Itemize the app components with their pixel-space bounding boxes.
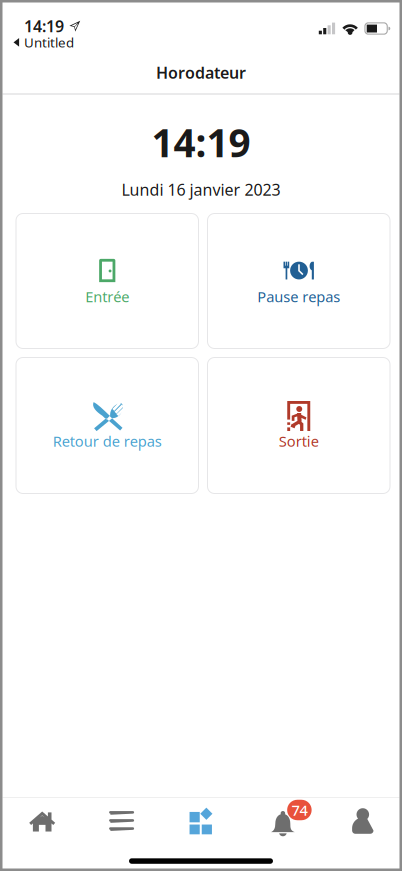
staticText: Sortie <box>279 431 319 451</box>
staticText: Horodateur <box>156 62 246 83</box>
staticText: Untitled <box>24 33 74 51</box>
button[interactable]: Notifications <box>241 786 320 856</box>
button[interactable]: Pause repas <box>207 213 390 348</box>
staticText: 74 <box>291 800 307 820</box>
button[interactable]: Accueil <box>2 786 82 856</box>
staticText: 14:19 <box>151 116 250 168</box>
button[interactable]: Menu <box>82 786 161 856</box>
staticText: Lundi 16 janvier 2023 <box>121 179 280 200</box>
staticText: Pause repas <box>257 287 340 306</box>
staticText: Retour de repas <box>53 431 162 451</box>
staticText: 14:19 <box>24 15 64 37</box>
button[interactable]: Profil <box>320 786 399 856</box>
button[interactable]: Tableau de bord <box>161 786 241 856</box>
button[interactable]: Entrée <box>16 213 198 348</box>
staticText: Entrée <box>85 287 129 306</box>
button[interactable]: Retour de repas <box>16 357 198 493</box>
button[interactable]: Sortie <box>207 357 390 493</box>
